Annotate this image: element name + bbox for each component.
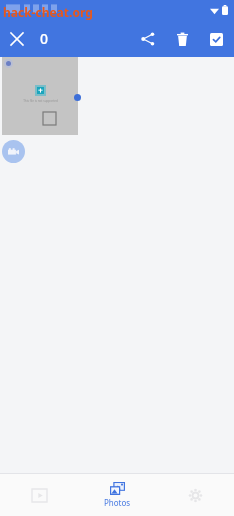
- staticText: Photos: [104, 497, 131, 508]
- button[interactable]: Share: [131, 22, 165, 56]
- staticText: This file is not supported: [23, 99, 58, 103]
- button[interactable]: Close selection: [0, 22, 34, 56]
- button[interactable]: Photos: [78, 474, 156, 516]
- staticText: 0: [40, 29, 49, 48]
- button[interactable]: Camera: [2, 140, 25, 163]
- button[interactable]: Select all: [199, 22, 233, 56]
- staticText: hack-cheat.org: [3, 4, 93, 20]
- button[interactable]: Photo thumbnail: [2, 57, 78, 135]
- button[interactable]: Delete: [165, 22, 199, 56]
